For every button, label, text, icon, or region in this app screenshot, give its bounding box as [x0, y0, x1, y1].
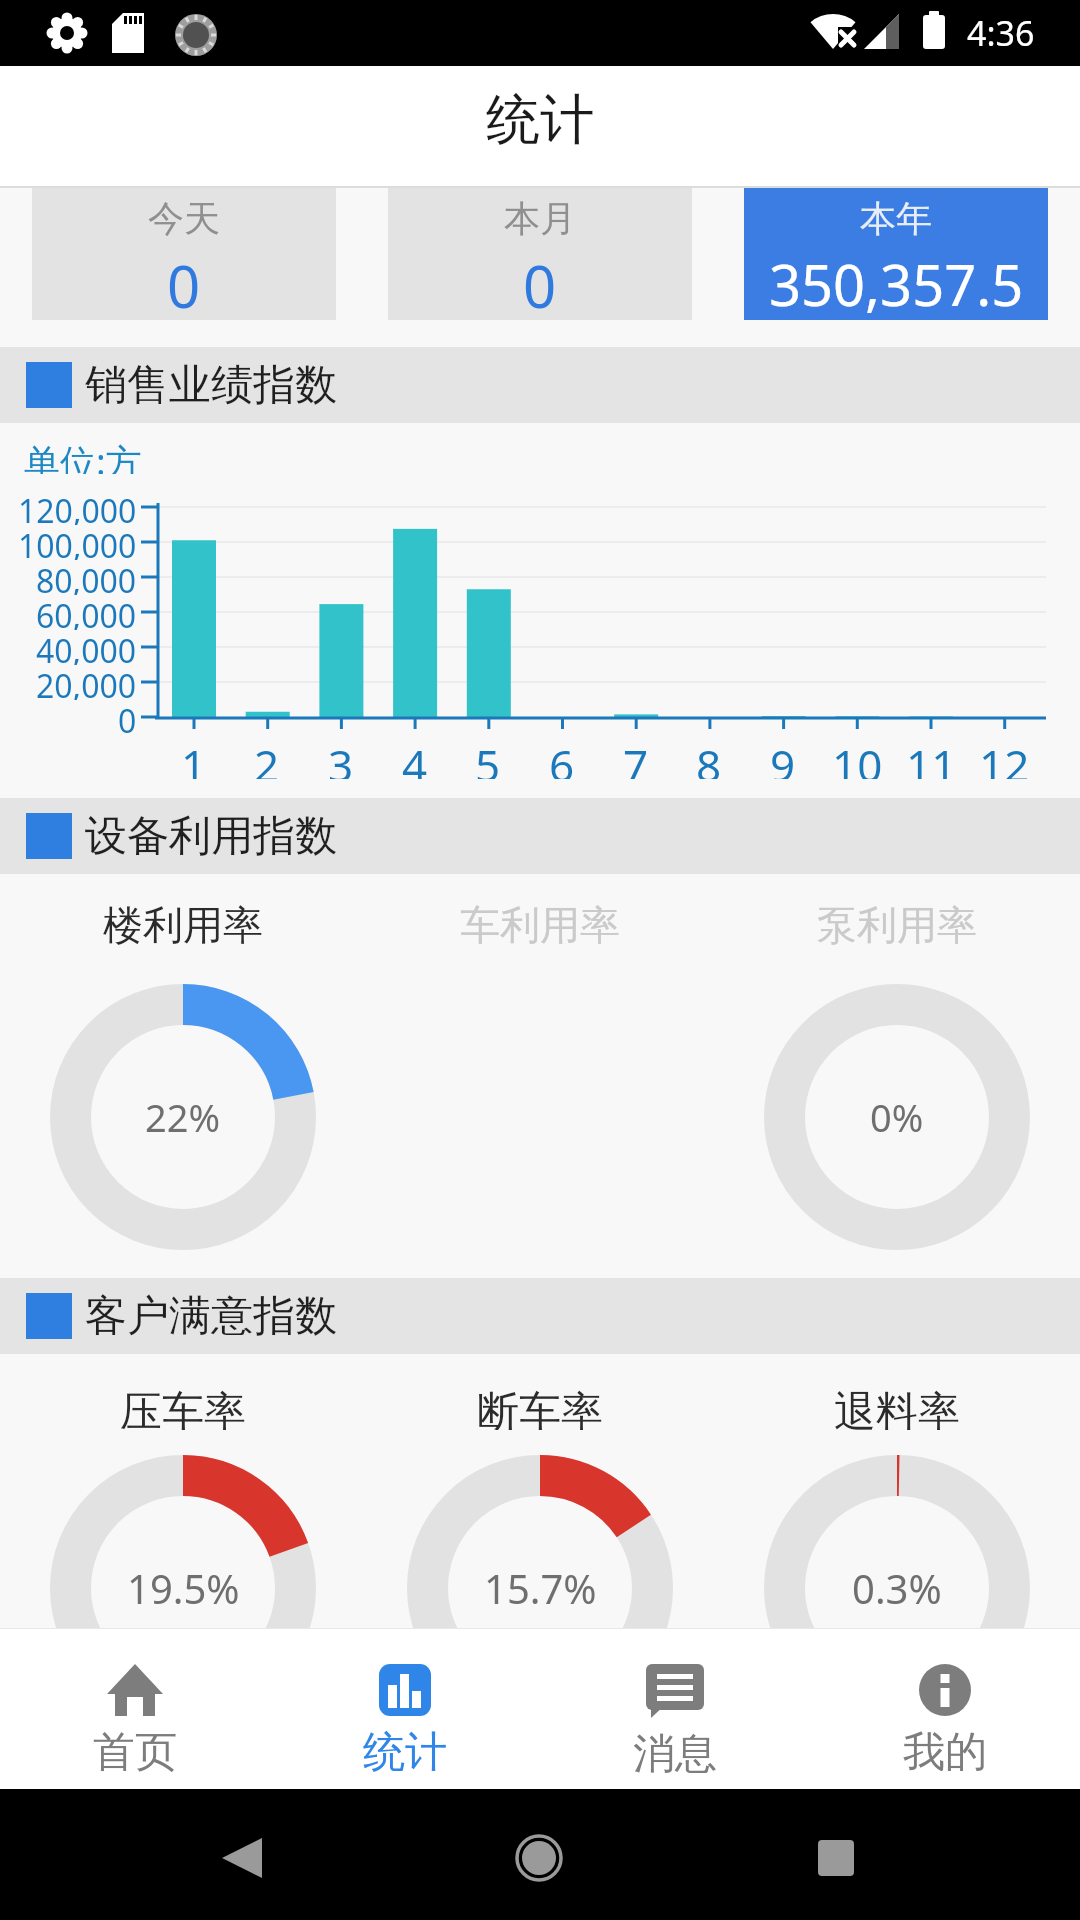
staticText: 40,000: [36, 629, 137, 665]
button[interactable]: 消息: [540, 1628, 810, 1789]
staticText: 0.3%: [852, 1561, 942, 1615]
button[interactable]: 统计: [270, 1628, 540, 1789]
staticText: 20,000: [36, 664, 137, 700]
staticText: 100,000: [18, 524, 137, 560]
staticText: 7: [623, 735, 649, 779]
staticText: 120,000: [18, 489, 137, 525]
staticText: 销售业绩指数: [85, 359, 337, 412]
staticText: 22%: [145, 1091, 221, 1143]
staticText: 设备利用指数: [85, 810, 337, 863]
staticText: 退料率: [834, 1386, 960, 1430]
staticText: 单位:方: [24, 437, 142, 474]
staticText: 楼利用率: [103, 900, 263, 946]
staticText: 今天: [148, 196, 220, 236]
staticText: 统计: [363, 1726, 447, 1779]
staticText: 4:36: [967, 10, 1035, 56]
button[interactable]: 楼利用率: [63, 900, 303, 946]
staticText: 本年: [860, 196, 932, 236]
staticText: 15.7%: [484, 1561, 597, 1615]
staticText: 0: [118, 699, 137, 735]
staticText: 12: [979, 735, 1030, 779]
staticText: 19.5%: [127, 1561, 240, 1615]
staticText: 10: [832, 735, 883, 779]
staticText: 首页: [93, 1726, 177, 1779]
staticText: 0%: [870, 1091, 924, 1143]
button[interactable]: 泵利用率: [777, 900, 1017, 946]
staticText: 我的: [903, 1726, 987, 1779]
staticText: 4: [402, 735, 428, 779]
staticText: 统计: [486, 86, 594, 154]
staticText: 消息: [633, 1728, 717, 1781]
staticText: 8: [696, 735, 722, 779]
staticText: 0: [523, 246, 557, 318]
staticText: 0: [167, 246, 201, 318]
staticText: 9: [770, 735, 796, 779]
button[interactable]: 首页: [0, 1628, 270, 1789]
staticText: 泵利用率: [817, 900, 977, 946]
button[interactable]: 车利用率: [420, 900, 660, 946]
staticText: 压车率: [120, 1386, 246, 1430]
staticText: 车利用率: [460, 900, 620, 946]
staticText: 11: [906, 735, 957, 779]
staticText: 本月: [504, 196, 576, 236]
button[interactable]: 今天: [32, 188, 336, 320]
staticText: 80,000: [36, 559, 137, 595]
staticText: 断车率: [477, 1386, 603, 1430]
button[interactable]: 本年: [744, 188, 1048, 320]
staticText: 6: [549, 735, 575, 779]
staticText: 5: [475, 735, 501, 779]
staticText: 客户满意指数: [85, 1290, 337, 1343]
staticText: 60,000: [36, 594, 137, 630]
button[interactable]: 本月: [388, 188, 692, 320]
button[interactable]: 我的: [810, 1628, 1080, 1789]
staticText: 350,357.5: [769, 246, 1024, 318]
staticText: 2: [254, 735, 280, 779]
staticText: 3: [328, 735, 354, 779]
staticText: 1: [181, 735, 207, 779]
